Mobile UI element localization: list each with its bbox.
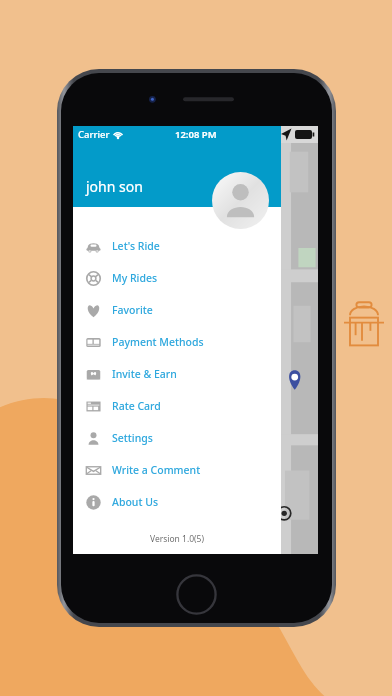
staticText: Let's Ride — [112, 239, 160, 253]
button[interactable]: About Us — [73, 486, 281, 518]
staticText: Settings — [112, 431, 153, 445]
button[interactable]: My Rides — [73, 262, 281, 294]
staticText: john son — [86, 177, 143, 196]
staticText: Version 1.0(5) — [73, 533, 281, 545]
staticText: About Us — [112, 495, 158, 509]
staticText: Payment Methods — [112, 335, 204, 349]
staticText: Write a Comment — [112, 463, 201, 477]
other: Decoration — [344, 297, 384, 352]
button[interactable]: Payment Methods — [73, 326, 281, 358]
button[interactable]: Invite & Earn — [73, 358, 281, 390]
staticText: Favorite — [112, 303, 153, 317]
staticText: Rate Card — [112, 399, 161, 413]
button[interactable]: Write a Comment — [73, 454, 281, 486]
button[interactable]: Settings — [73, 422, 281, 454]
staticText: Invite & Earn — [112, 367, 177, 381]
button[interactable]: Let's Ride — [73, 230, 281, 262]
staticText: 12:08 PM — [175, 128, 217, 141]
button[interactable]: Favorite — [73, 294, 281, 326]
staticText: My Rides — [112, 271, 158, 285]
staticText: Carrier — [78, 128, 110, 141]
button[interactable]: Profile photo — [212, 172, 269, 229]
button[interactable]: Rate Card — [73, 390, 281, 422]
